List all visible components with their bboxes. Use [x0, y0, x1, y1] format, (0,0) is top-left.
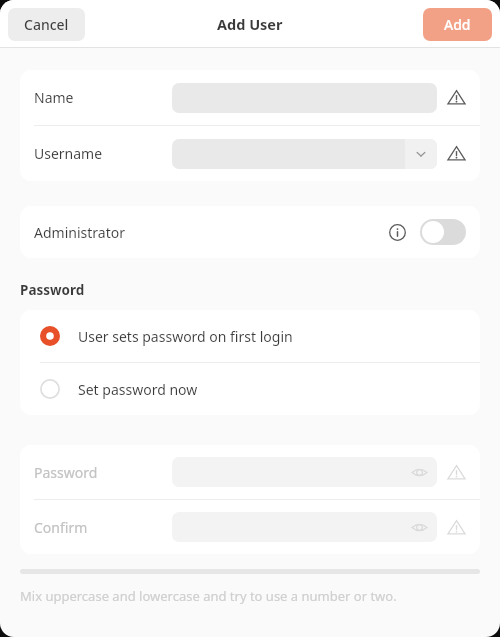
button[interactable]: Administrator — [20, 206, 480, 258]
button[interactable]: Cancel — [8, 8, 85, 41]
button[interactable]: Administrator toggle — [420, 219, 466, 245]
button[interactable]: Username — [20, 126, 480, 181]
staticText: Mix uppercase and lowercase and try to u… — [20, 587, 397, 605]
button[interactable]: Choose username — [405, 139, 437, 169]
staticText: Administrator — [34, 223, 386, 242]
staticText: Add — [444, 15, 471, 34]
staticText: User sets password on first login — [78, 327, 293, 346]
button[interactable]: User sets password on first login — [20, 310, 480, 362]
staticText: Password — [20, 281, 85, 299]
staticText: Name — [34, 88, 172, 107]
button[interactable]: Show password — [409, 462, 429, 482]
button[interactable]: Info — [386, 221, 408, 243]
button[interactable]: Confirm — [20, 500, 480, 554]
staticText: Add User — [217, 14, 283, 34]
button[interactable]: Password — [20, 445, 480, 499]
button[interactable]: Add — [423, 8, 492, 41]
staticText: Set password now — [78, 380, 198, 399]
staticText: Confirm — [34, 518, 172, 537]
staticText: Password — [34, 463, 172, 482]
staticText: Username — [34, 144, 172, 163]
button[interactable]: Set password now — [20, 363, 480, 415]
staticText: Cancel — [24, 15, 69, 34]
button[interactable]: Show password — [409, 517, 429, 537]
button[interactable]: Name — [20, 70, 480, 125]
